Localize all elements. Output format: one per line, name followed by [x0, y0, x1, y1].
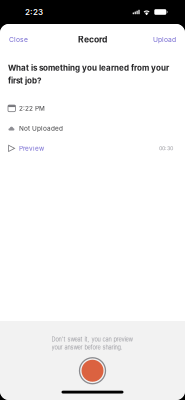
staticText: 2:23	[25, 7, 43, 17]
staticText: Not Uploaded	[19, 124, 63, 132]
staticText: What is something you learned from your …	[8, 63, 169, 85]
button[interactable]: Record	[78, 357, 106, 385]
staticText: 2:22 PM	[19, 104, 45, 112]
staticText: Preview	[19, 144, 44, 152]
button[interactable]: Close	[0, 24, 37, 55]
button[interactable]: Upload	[144, 24, 185, 55]
staticText: Close	[9, 35, 28, 44]
staticText: Record	[78, 34, 107, 45]
button[interactable]: Preview	[8, 138, 173, 158]
staticText: Upload	[153, 35, 176, 44]
staticText: Don't sweat it, you can preview your ans…	[51, 336, 133, 351]
staticText: 00:30	[159, 145, 173, 152]
